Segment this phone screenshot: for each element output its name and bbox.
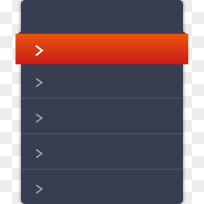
button[interactable]: Selected item bbox=[16, 34, 189, 65]
button[interactable]: List item 2 bbox=[21, 63, 183, 99]
button[interactable]: List item 5 bbox=[21, 169, 183, 204]
button[interactable]: List item 4 bbox=[21, 134, 183, 170]
button[interactable]: List item 3 bbox=[21, 98, 183, 134]
